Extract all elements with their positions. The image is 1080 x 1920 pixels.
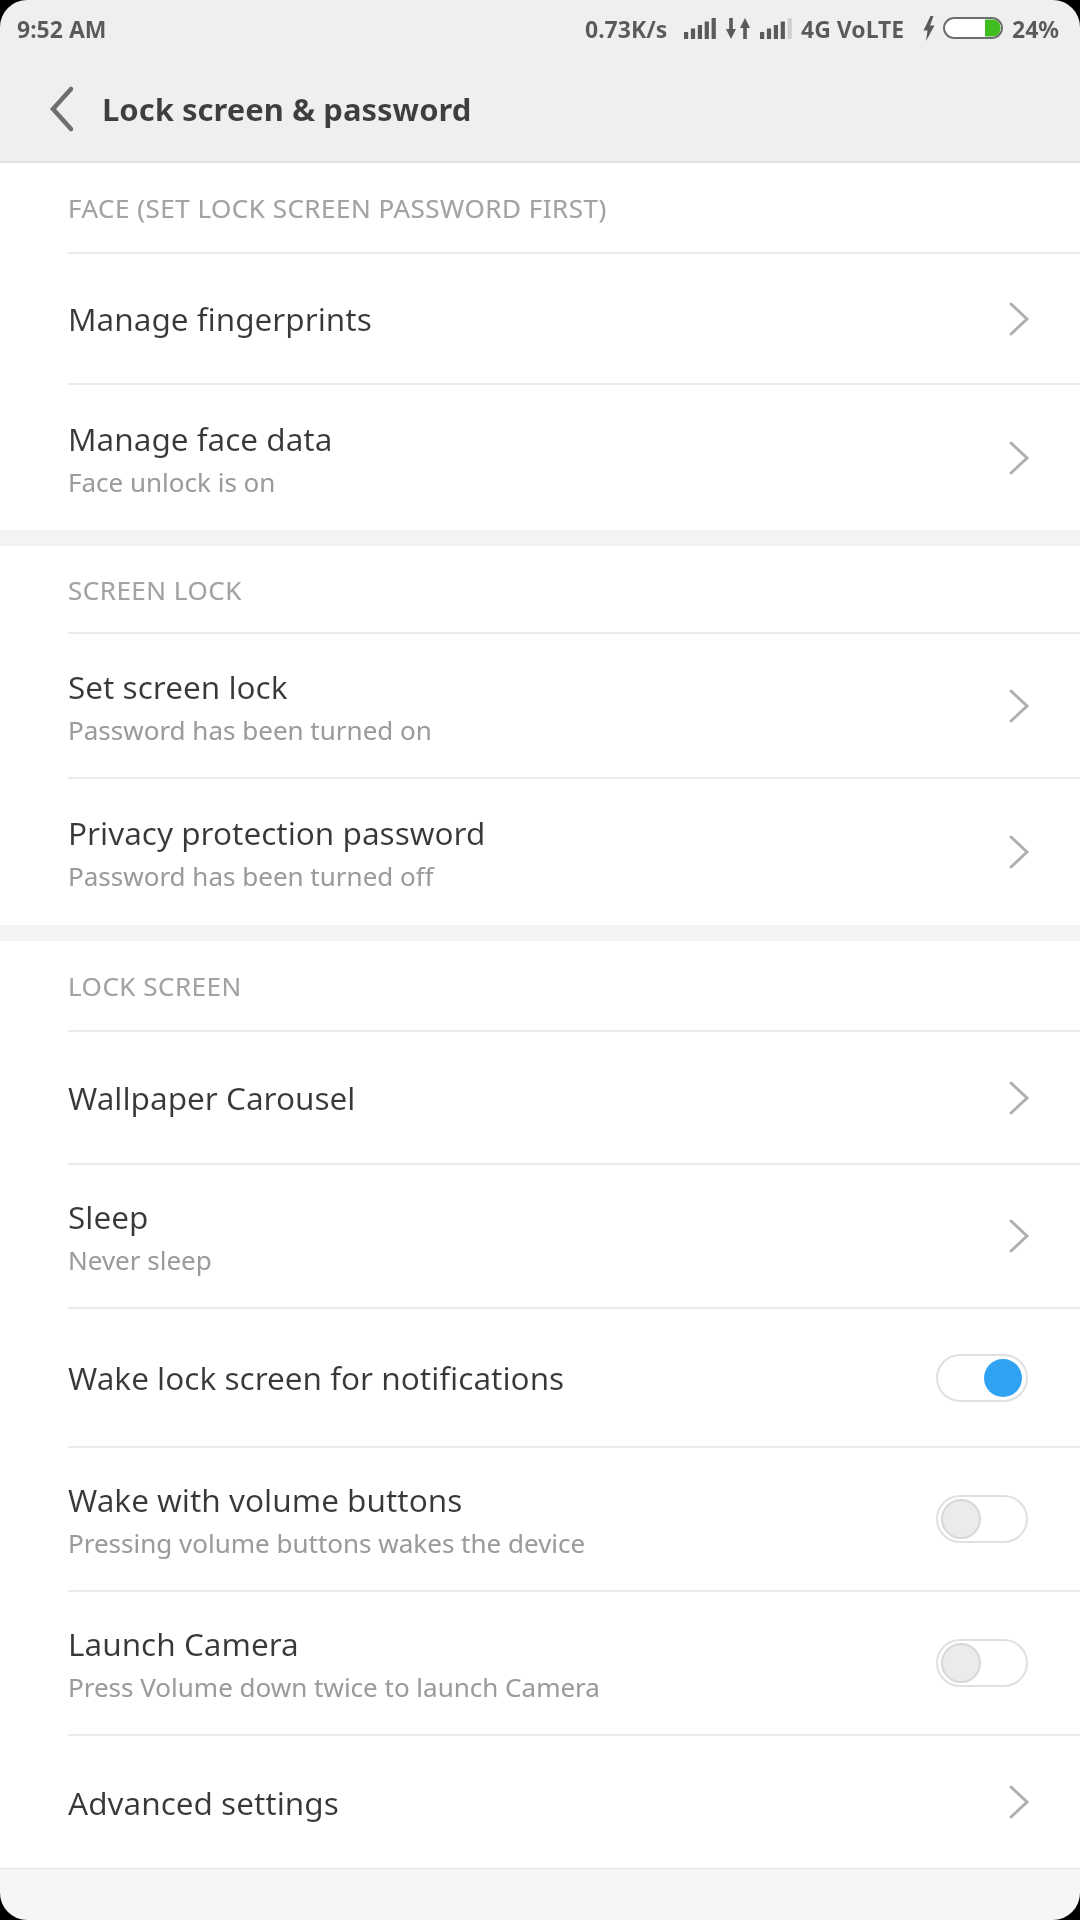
staticText: Wake with volume buttons — [68, 1478, 463, 1521]
staticText: LOCK SCREEN — [68, 968, 242, 1003]
staticText: Advanced settings — [68, 1781, 339, 1824]
button[interactable]: Advanced settings — [0, 1736, 1080, 1868]
button[interactable]: Manage face data — [0, 385, 1080, 530]
staticText: Press Volume down twice to launch Camera — [68, 1669, 600, 1704]
staticText: 9:52 AM — [17, 13, 107, 44]
staticText: 24% — [1012, 13, 1060, 44]
staticText: FACE (SET LOCK SCREEN PASSWORD FIRST) — [68, 190, 607, 225]
staticText: SCREEN LOCK — [68, 572, 242, 607]
staticText: Face unlock is on — [68, 464, 276, 499]
staticText: Manage face data — [68, 417, 333, 460]
staticText: Lock screen & password — [102, 88, 472, 130]
staticText: Sleep — [68, 1195, 149, 1238]
button[interactable] — [40, 87, 84, 131]
button[interactable]: Sleep — [0, 1165, 1080, 1307]
staticText: 0.73K/s — [585, 13, 668, 44]
button[interactable]: Wake lock screen for notifications — [0, 1309, 1080, 1446]
button[interactable]: Launch Camera — [0, 1592, 1080, 1734]
button[interactable]: Wallpaper Carousel — [0, 1032, 1080, 1163]
staticText: Wake lock screen for notifications — [68, 1356, 565, 1399]
button[interactable]: Manage fingerprints — [0, 254, 1080, 383]
button[interactable]: Privacy protection password — [0, 779, 1080, 925]
staticText: Wallpaper Carousel — [68, 1076, 356, 1119]
staticText: Never sleep — [68, 1242, 212, 1277]
staticText: Set screen lock — [68, 665, 288, 708]
staticText: 4G VoLTE — [801, 13, 905, 44]
staticText: Privacy protection password — [68, 811, 486, 854]
staticText: Pressing volume buttons wakes the device — [68, 1525, 586, 1560]
staticText: Launch Camera — [68, 1622, 299, 1665]
button[interactable]: Wake with volume buttons — [0, 1448, 1080, 1590]
staticText: Password has been turned off — [68, 858, 434, 893]
staticText: Password has been turned on — [68, 712, 432, 747]
staticText: Manage fingerprints — [68, 297, 372, 340]
button[interactable]: Set screen lock — [0, 634, 1080, 777]
